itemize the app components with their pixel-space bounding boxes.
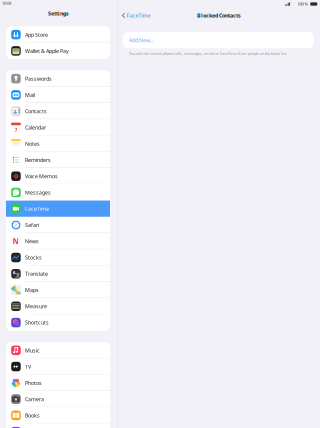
button[interactable]: Wallet & Apple Pay: [6, 43, 110, 59]
staticText: Reminders: [25, 156, 51, 163]
button[interactable]: FaceTime: [6, 201, 110, 217]
button[interactable]: A: [6, 266, 110, 282]
button[interactable]: Books: [6, 407, 110, 423]
button[interactable]: Passwords: [6, 70, 110, 87]
staticText: 100 %: [298, 1, 308, 7]
staticText: Passwords: [25, 75, 52, 82]
staticText: Messages: [25, 189, 51, 196]
button[interactable]: Contacts: [6, 103, 110, 119]
staticText: Blocked Contacts: [197, 12, 241, 19]
staticText: Safari: [25, 221, 39, 228]
staticText: Settings: [48, 10, 69, 17]
button[interactable]: Shortcuts: [6, 314, 110, 331]
button[interactable]: App Store: [6, 26, 110, 43]
staticText: Contacts: [25, 108, 47, 115]
staticText: FaceTime: [25, 205, 49, 212]
staticText: Calendar: [25, 124, 46, 131]
staticText: Wallet & Apple Pay: [25, 47, 69, 54]
staticText: Stocks: [25, 254, 42, 261]
staticText: 18:08: [2, 0, 11, 6]
button[interactable]: 7: [6, 119, 110, 136]
button[interactable]: Music: [6, 342, 110, 358]
button[interactable]: TV: [6, 358, 110, 375]
button[interactable]: Mail: [6, 87, 110, 103]
button[interactable]: Stocks: [6, 249, 110, 266]
staticText: Maps: [25, 286, 39, 294]
staticText: Notes: [25, 140, 40, 147]
button[interactable]: Photos: [6, 375, 110, 391]
staticText: Add New...: [129, 37, 153, 44]
button[interactable]: Camera: [6, 391, 110, 407]
button[interactable]: Podcasts: [6, 423, 110, 428]
staticText: N: [12, 236, 19, 246]
button[interactable]: N: [6, 233, 110, 249]
button[interactable]: Notes: [6, 136, 110, 152]
staticText: Photos: [25, 379, 42, 386]
button[interactable]: Safari: [6, 217, 110, 233]
button[interactable]: FaceTime: [118, 9, 150, 22]
staticText: Mail: [25, 91, 35, 98]
staticText: Measure: [25, 303, 47, 310]
staticText: News: [25, 238, 39, 245]
staticText: A: [13, 270, 16, 275]
staticText: Music: [25, 347, 40, 354]
staticText: Translate: [25, 270, 48, 277]
staticText: Voice Memos: [25, 173, 58, 180]
button[interactable]: Add New...: [123, 32, 314, 48]
staticText: 7: [14, 126, 17, 133]
staticText: Books: [25, 412, 40, 419]
staticText: You will not receive phone calls, messag…: [129, 51, 287, 56]
staticText: FaceTime: [126, 12, 150, 19]
button[interactable]: Messages: [6, 184, 110, 201]
staticText: 文: [15, 272, 20, 278]
staticText: App Store: [25, 31, 48, 38]
button[interactable]: Measure: [6, 298, 110, 314]
button[interactable]: Voice Memos: [6, 168, 110, 184]
staticText: Camera: [25, 395, 44, 403]
button[interactable]: Reminders: [6, 152, 110, 168]
staticText: TV: [25, 363, 31, 370]
button[interactable]: Maps: [6, 282, 110, 298]
staticText: Shortcuts: [25, 319, 49, 326]
